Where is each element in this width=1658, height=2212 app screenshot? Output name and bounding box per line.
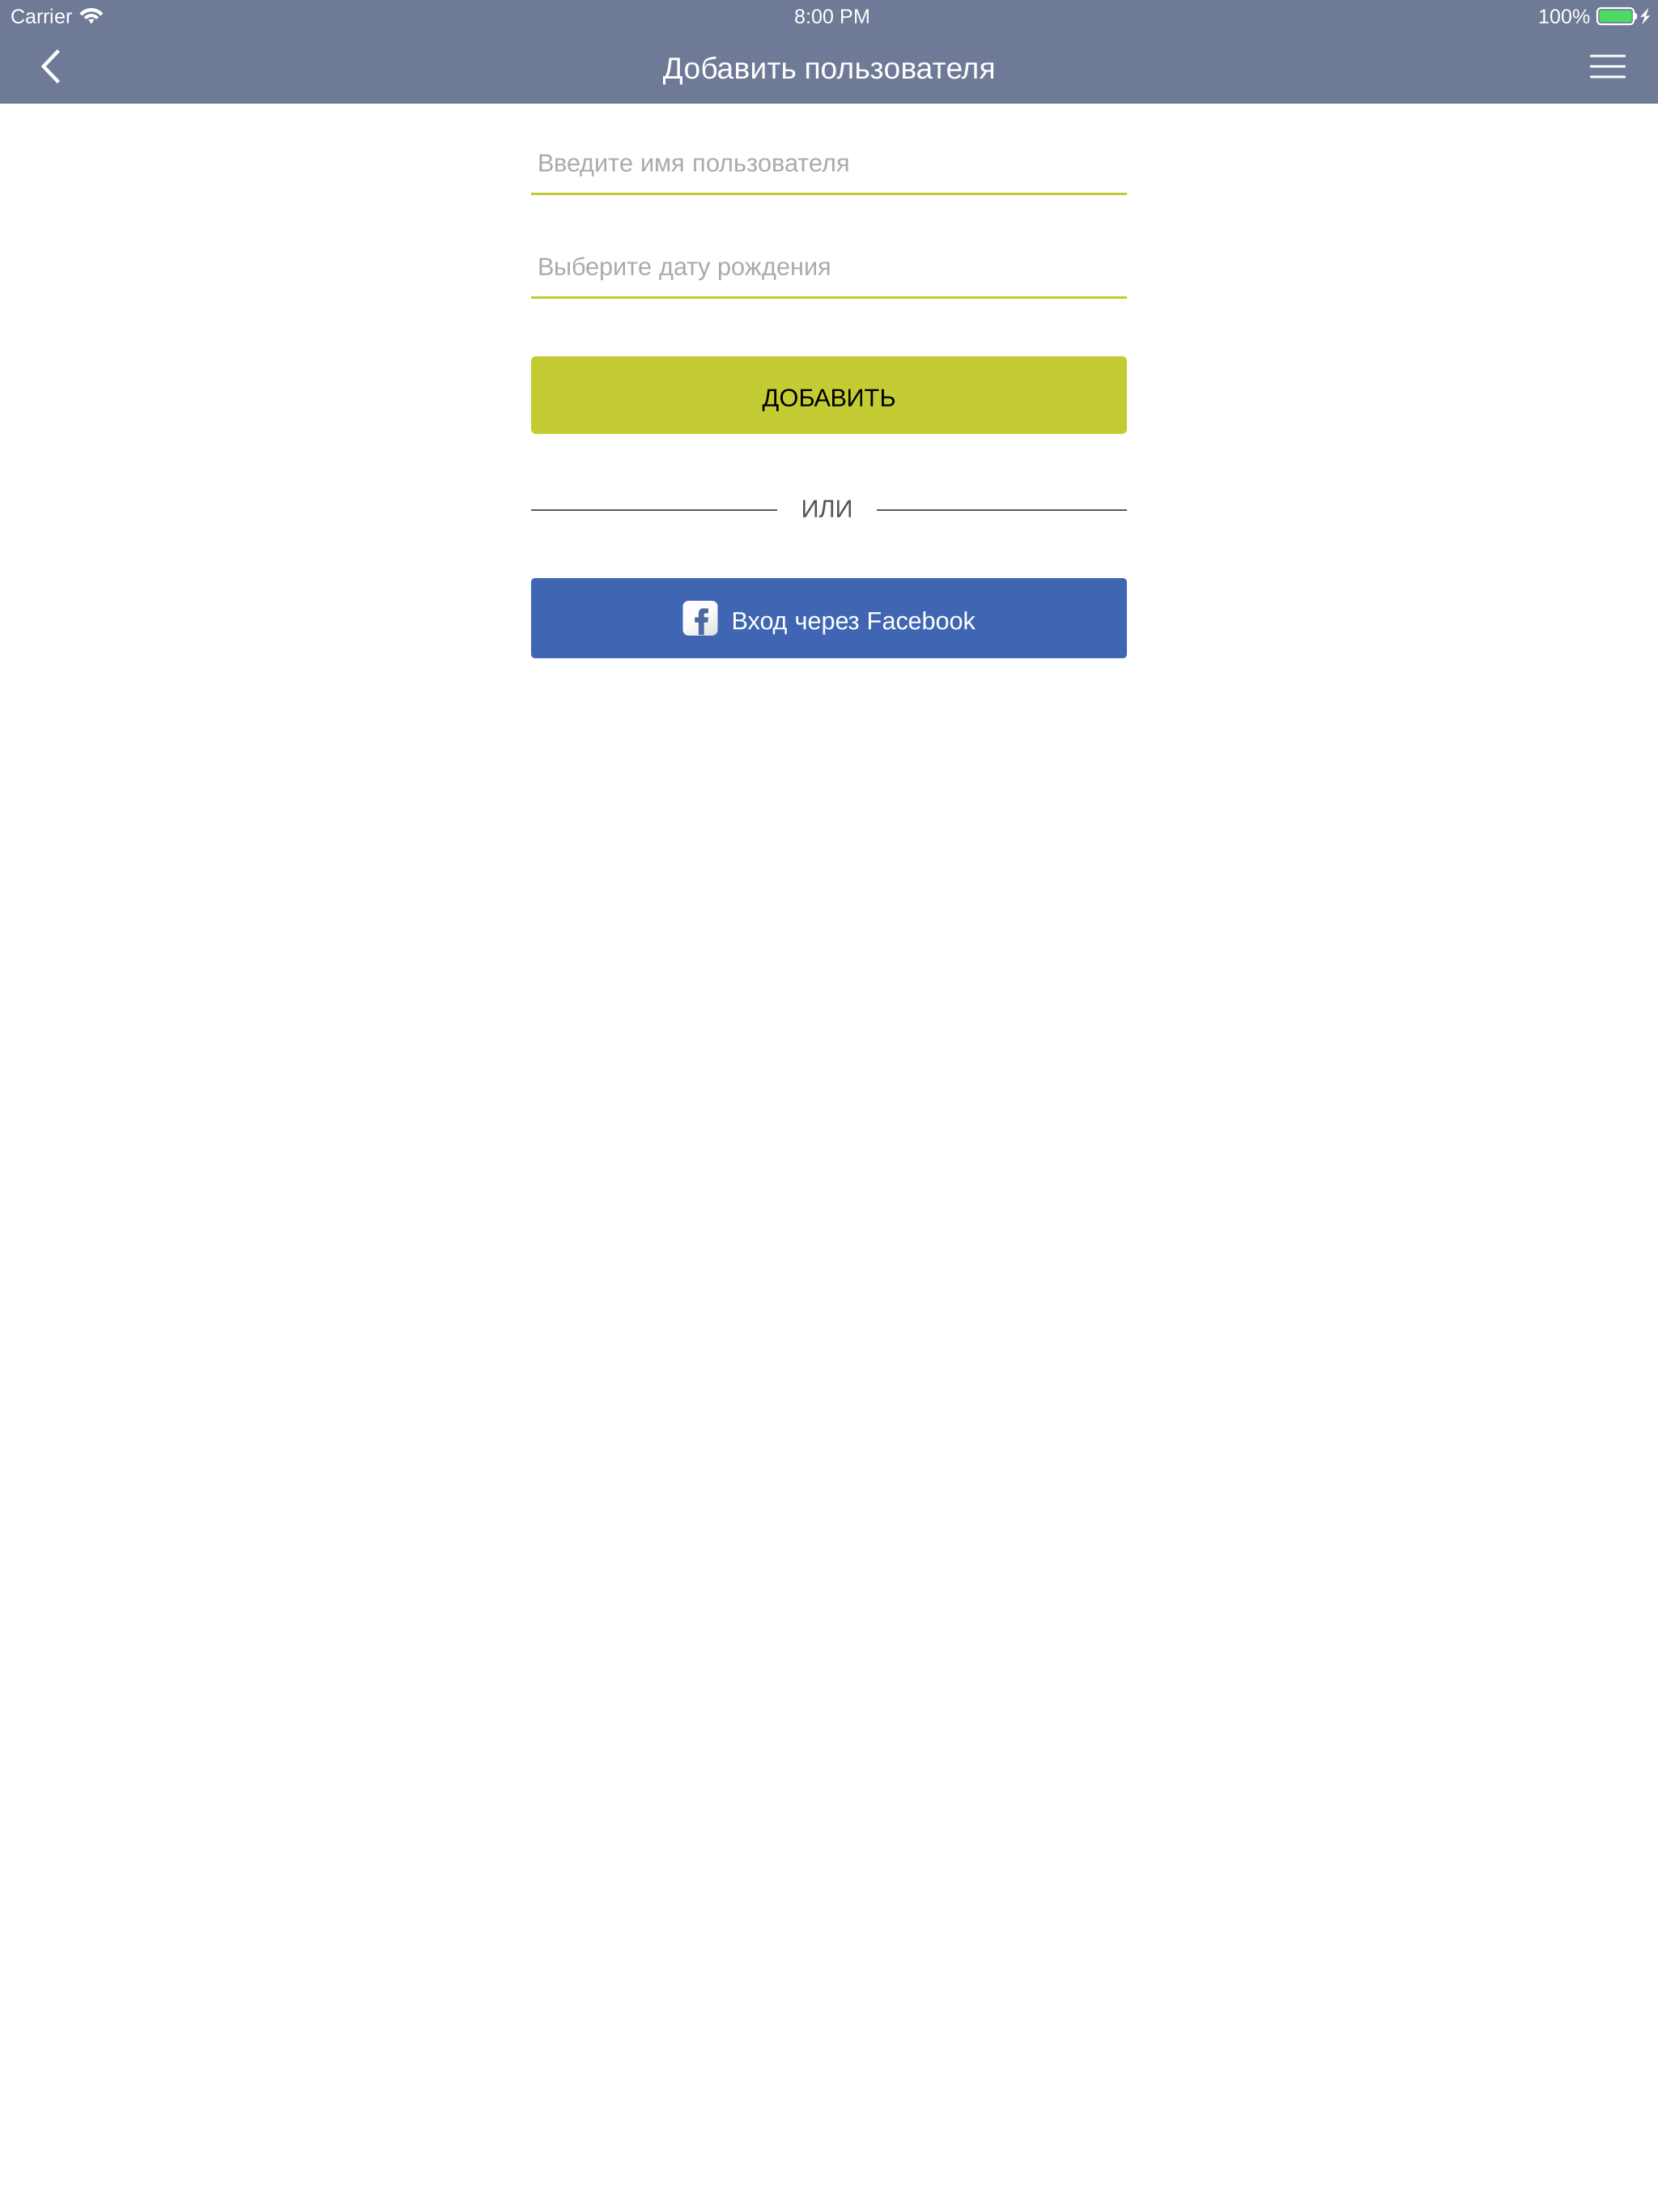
- button[interactable]: Back: [21, 40, 78, 96]
- staticText: 8:00 PM: [794, 5, 870, 28]
- staticText: Выберите дату рождения: [538, 253, 831, 280]
- staticText: Carrier: [11, 5, 72, 28]
- staticText: ДОБАВИТЬ: [762, 384, 896, 411]
- button[interactable]: ДОБАВИТЬ: [531, 356, 1127, 434]
- button[interactable]: Вход через Facebook: [531, 578, 1127, 658]
- button[interactable]: Введите имя пользователя: [531, 145, 1127, 195]
- staticText: 100%: [1538, 5, 1590, 28]
- staticText: Введите имя пользователя: [538, 149, 850, 177]
- staticText: Вход через Facebook: [731, 607, 975, 635]
- staticText: Добавить пользователя: [663, 51, 995, 85]
- staticText: ИЛИ: [801, 495, 853, 522]
- button[interactable]: Выберите дату рождения: [531, 249, 1127, 299]
- button[interactable]: Menu: [1579, 40, 1637, 96]
